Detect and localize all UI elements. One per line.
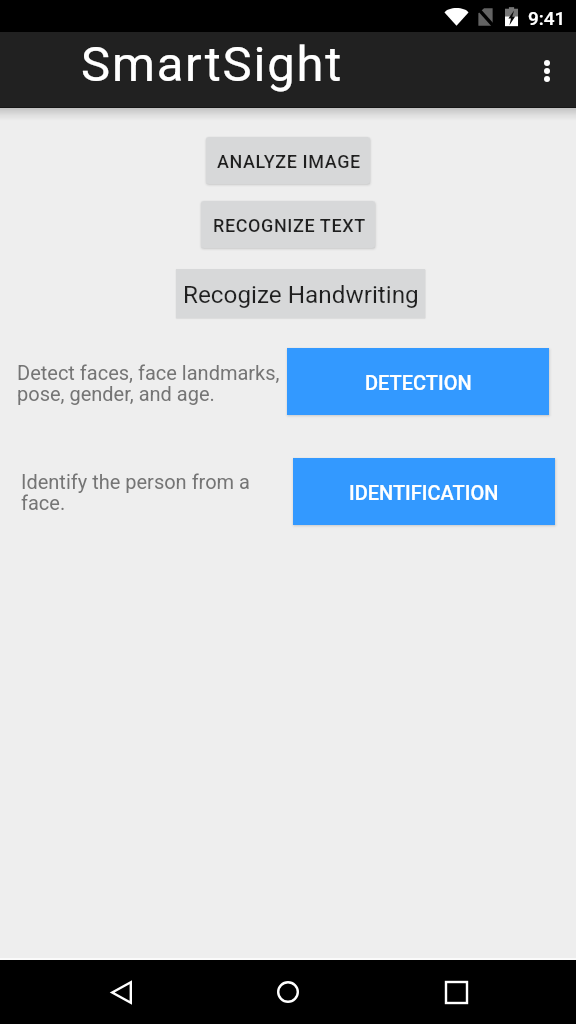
button[interactable]: ANALYZE IMAGE (206, 137, 370, 184)
staticText: RECOGNIZE TEXT (213, 215, 366, 236)
button[interactable]: RECOGNIZE TEXT (201, 201, 375, 248)
button[interactable]: IDENTIFICATION (293, 458, 555, 525)
staticText: Recogize Handwriting (183, 280, 419, 308)
staticText: DETECTION (365, 371, 472, 394)
button[interactable]: Recent apps (424, 960, 488, 1024)
staticText: 9:41 (528, 7, 566, 29)
staticText: SmartSight (81, 36, 344, 93)
staticText: Detect faces, face landmarks, pose, gend… (17, 361, 283, 406)
button[interactable]: More options (518, 32, 576, 107)
button[interactable]: Back (89, 960, 153, 1024)
staticText: ANALYZE IMAGE (217, 151, 361, 172)
button[interactable]: DETECTION (287, 348, 549, 415)
staticText: Identify the person from a face. (21, 470, 271, 515)
button[interactable]: Home (256, 960, 320, 1024)
staticText: IDENTIFICATION (349, 481, 499, 504)
button[interactable]: Recogize Handwriting (176, 269, 425, 318)
